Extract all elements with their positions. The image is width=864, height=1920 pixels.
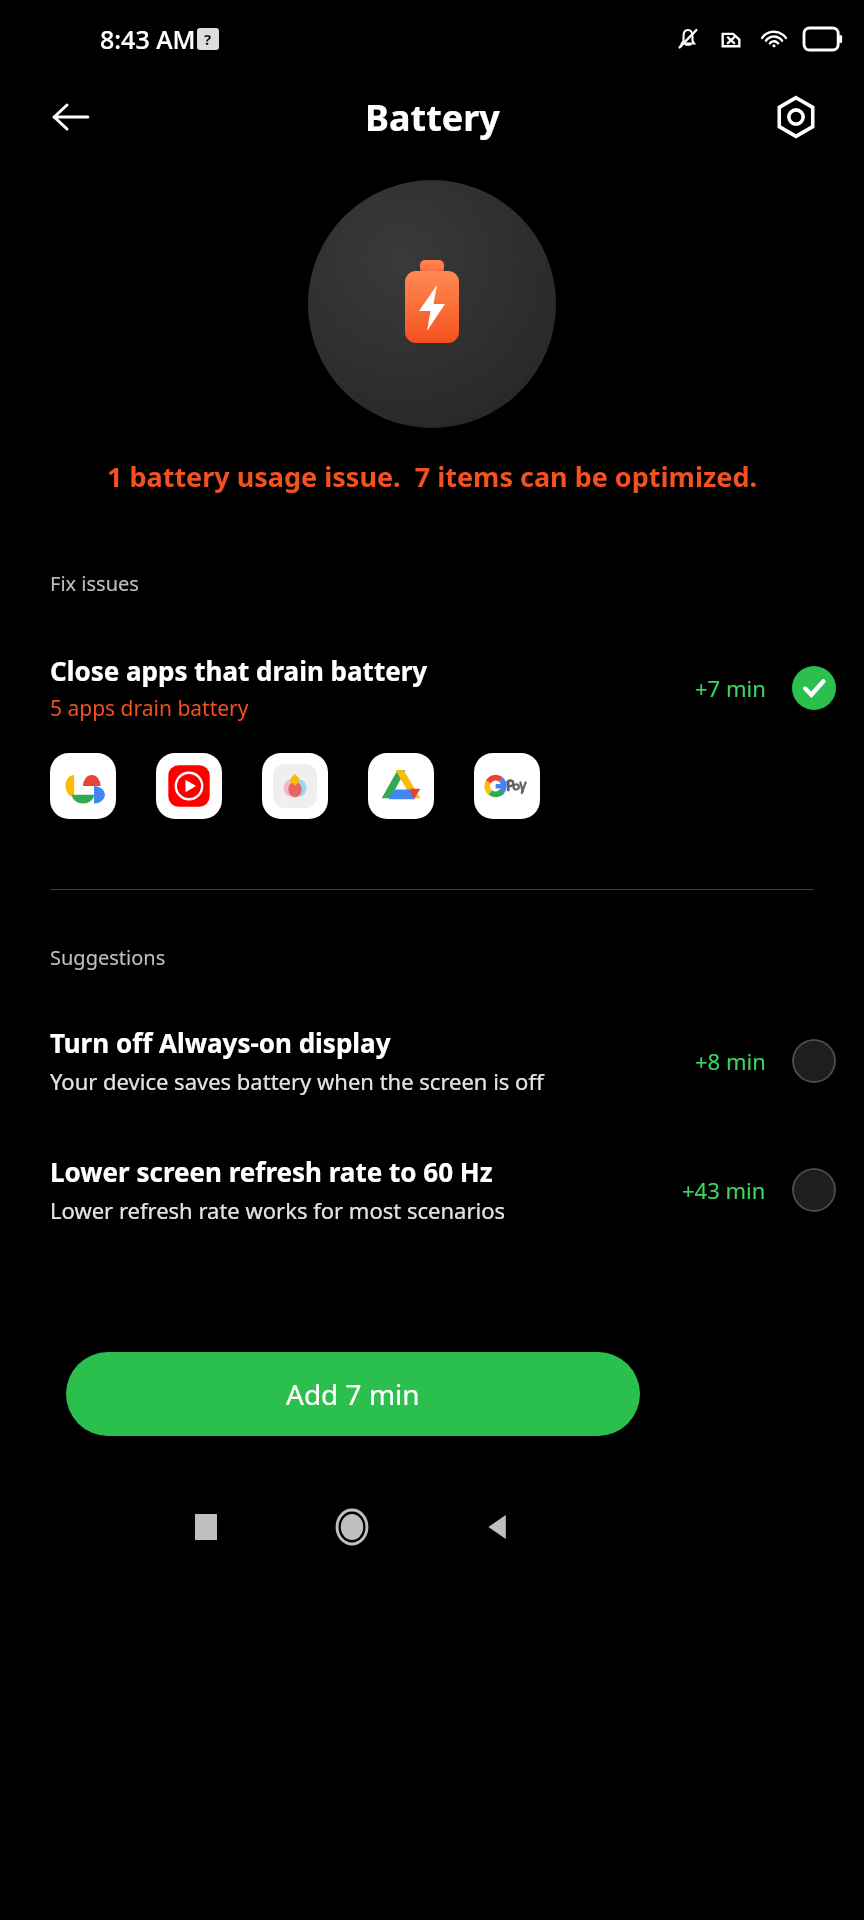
button[interactable]: Lower screen refresh rate to 60 Hz	[0, 1154, 864, 1225]
staticText: +8 min	[695, 1046, 766, 1076]
button[interactable]: Back	[34, 80, 108, 154]
button[interactable]: Turn off Always-on display	[0, 1025, 864, 1096]
button[interactable]: Add 7 min	[66, 1352, 640, 1436]
staticText: Battery	[365, 93, 500, 142]
button[interactable]: App	[474, 753, 540, 819]
staticText: 5 apps drain battery	[50, 694, 249, 723]
button[interactable]: Settings	[760, 81, 832, 153]
button[interactable]: Toggle Lower screen refresh rate to 60 H…	[792, 1168, 836, 1212]
button[interactable]: Back	[460, 1490, 536, 1564]
staticText: +7 min	[695, 673, 766, 703]
staticText: 1 battery usage issue. 7 items can be op…	[14, 458, 850, 495]
button[interactable]: Toggle Turn off Always-on display	[792, 1039, 836, 1083]
staticText: Your device saves battery when the scree…	[50, 1066, 544, 1096]
staticText: ?	[204, 29, 212, 49]
staticText: Fix issues	[50, 570, 139, 597]
button[interactable]: App	[50, 753, 116, 819]
staticText: 8:43 AM	[100, 22, 196, 56]
staticText: +43 min	[682, 1175, 766, 1205]
button[interactable]: Close apps that drain battery	[0, 653, 864, 723]
staticText: Suggestions	[50, 944, 166, 971]
button[interactable]: App	[368, 753, 434, 819]
staticText: Lower refresh rate works for most scenar…	[50, 1195, 506, 1225]
staticText: Turn off Always-on display	[50, 1025, 391, 1060]
button[interactable]: App	[156, 753, 222, 819]
button[interactable]: Recents	[168, 1490, 244, 1564]
staticText: Lower screen refresh rate to 60 Hz	[50, 1154, 493, 1189]
staticText: Add 7 min	[286, 1375, 420, 1413]
button[interactable]: Home	[314, 1490, 390, 1564]
staticText: Close apps that drain battery	[50, 653, 428, 688]
button[interactable]: App	[262, 753, 328, 819]
